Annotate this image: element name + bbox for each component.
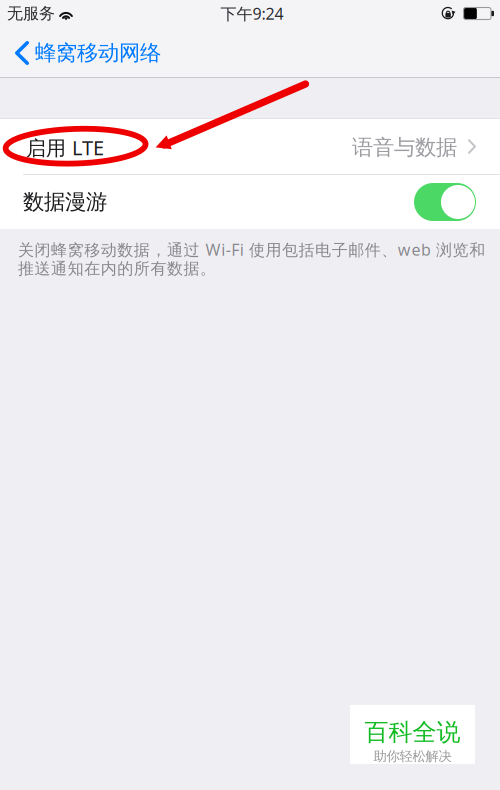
button[interactable]: 启用 LTE [0,119,500,174]
staticText: 无服务 [7,4,55,23]
staticText: 百科全说 [364,718,460,747]
staticText: 下午9:24 [220,3,283,24]
staticText: 启用 LTE [26,134,104,161]
staticText: 助你轻松解决 [373,748,451,764]
staticText: 关闭蜂窝移动数据，通过 Wi-Fi 使用包括电子邮件、web 浏览和推送通知在内… [18,239,485,278]
staticText: 语音与数据 [352,134,457,161]
staticText: 蜂窝移动网络 [35,40,161,66]
button[interactable]: 数据漫游 [414,183,476,221]
staticText: 数据漫游 [23,189,107,215]
button[interactable]: 蜂窝移动网络 [0,32,171,74]
